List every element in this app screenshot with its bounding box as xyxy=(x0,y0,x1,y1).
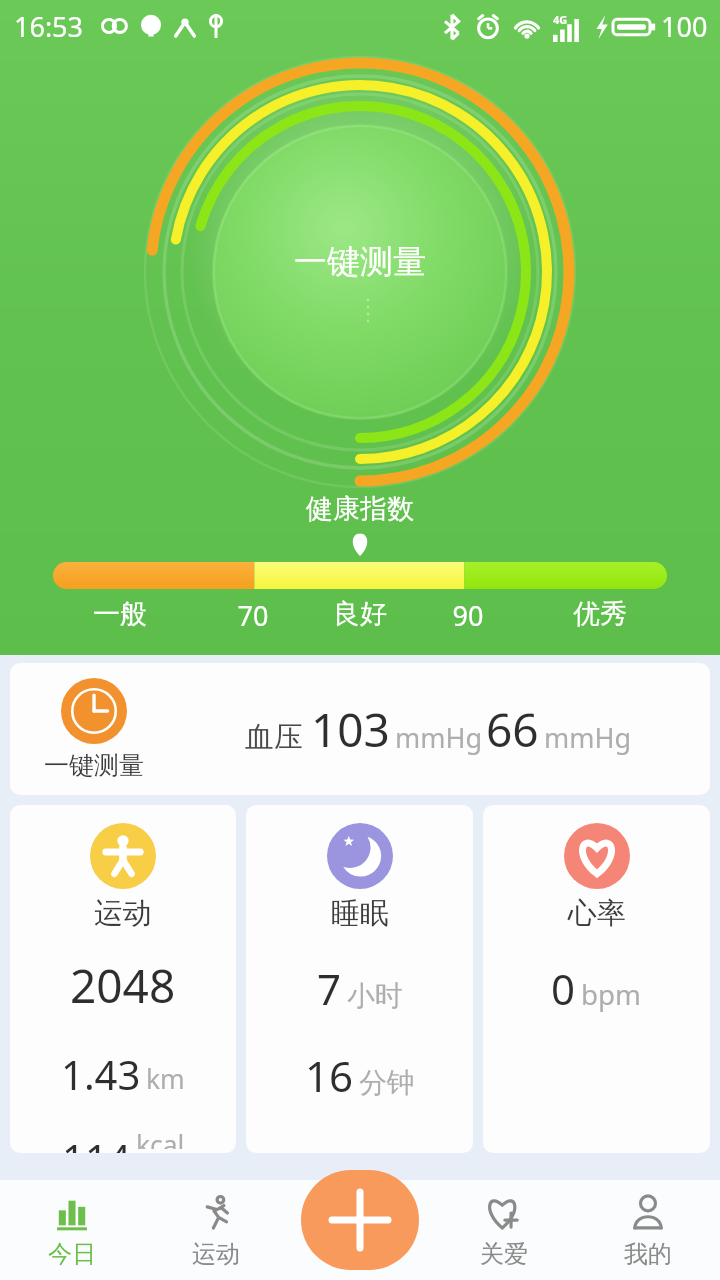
staticText: 16:53 xyxy=(14,8,84,45)
staticText: 睡眠 xyxy=(331,895,389,932)
staticText: mmHg xyxy=(544,719,632,756)
staticText: 100 xyxy=(661,8,708,45)
button[interactable]: 我的 xyxy=(576,1180,720,1280)
staticText: 一键测量 xyxy=(44,750,144,781)
button[interactable]: 运动 xyxy=(144,1180,288,1280)
staticText: 今日 xyxy=(48,1239,96,1269)
staticText: 2048 xyxy=(70,954,176,1017)
staticText: 运动 xyxy=(94,895,152,932)
staticText: 优秀 xyxy=(240,597,720,631)
staticText: 健康指数 xyxy=(306,492,414,526)
button[interactable]: 一键测量 xyxy=(0,58,720,478)
staticText: 114 xyxy=(62,1131,131,1153)
button[interactable]: 今日 xyxy=(0,1180,144,1280)
button[interactable]: 关爱 xyxy=(432,1180,576,1280)
button[interactable]: 运动 xyxy=(10,805,236,1153)
staticText: km xyxy=(146,1061,185,1097)
staticText: 一般 xyxy=(0,597,480,631)
staticText: 0 xyxy=(551,960,576,1017)
button[interactable]: 心率 xyxy=(483,805,710,1153)
staticText: 我的 xyxy=(624,1239,672,1269)
button[interactable]: 一键测量 xyxy=(10,663,710,795)
button[interactable]: 添加 xyxy=(301,1170,419,1270)
staticText: 70 xyxy=(0,597,613,634)
staticText: 4G xyxy=(553,12,568,27)
staticText: 关爱 xyxy=(480,1239,528,1269)
staticText: 16 xyxy=(305,1047,354,1104)
staticText: bpm xyxy=(581,975,642,1013)
button[interactable]: 睡眠 xyxy=(246,805,473,1153)
staticText: 66 xyxy=(486,698,539,761)
staticText: 1.43 xyxy=(61,1047,141,1101)
staticText: 103 xyxy=(311,698,390,761)
staticText: mmHg xyxy=(395,719,483,756)
staticText: 90 xyxy=(108,597,720,634)
staticText: 心率 xyxy=(568,895,626,932)
staticText: 7 xyxy=(317,960,342,1017)
staticText: 良好 xyxy=(0,597,720,631)
staticText: 一键测量 xyxy=(294,241,426,283)
staticText: kcal xyxy=(136,1127,185,1149)
staticText: 运动 xyxy=(192,1239,240,1269)
staticText: 分钟 xyxy=(359,1065,415,1100)
staticText: 血压 xyxy=(245,719,303,756)
staticText: 小时 xyxy=(347,978,403,1013)
